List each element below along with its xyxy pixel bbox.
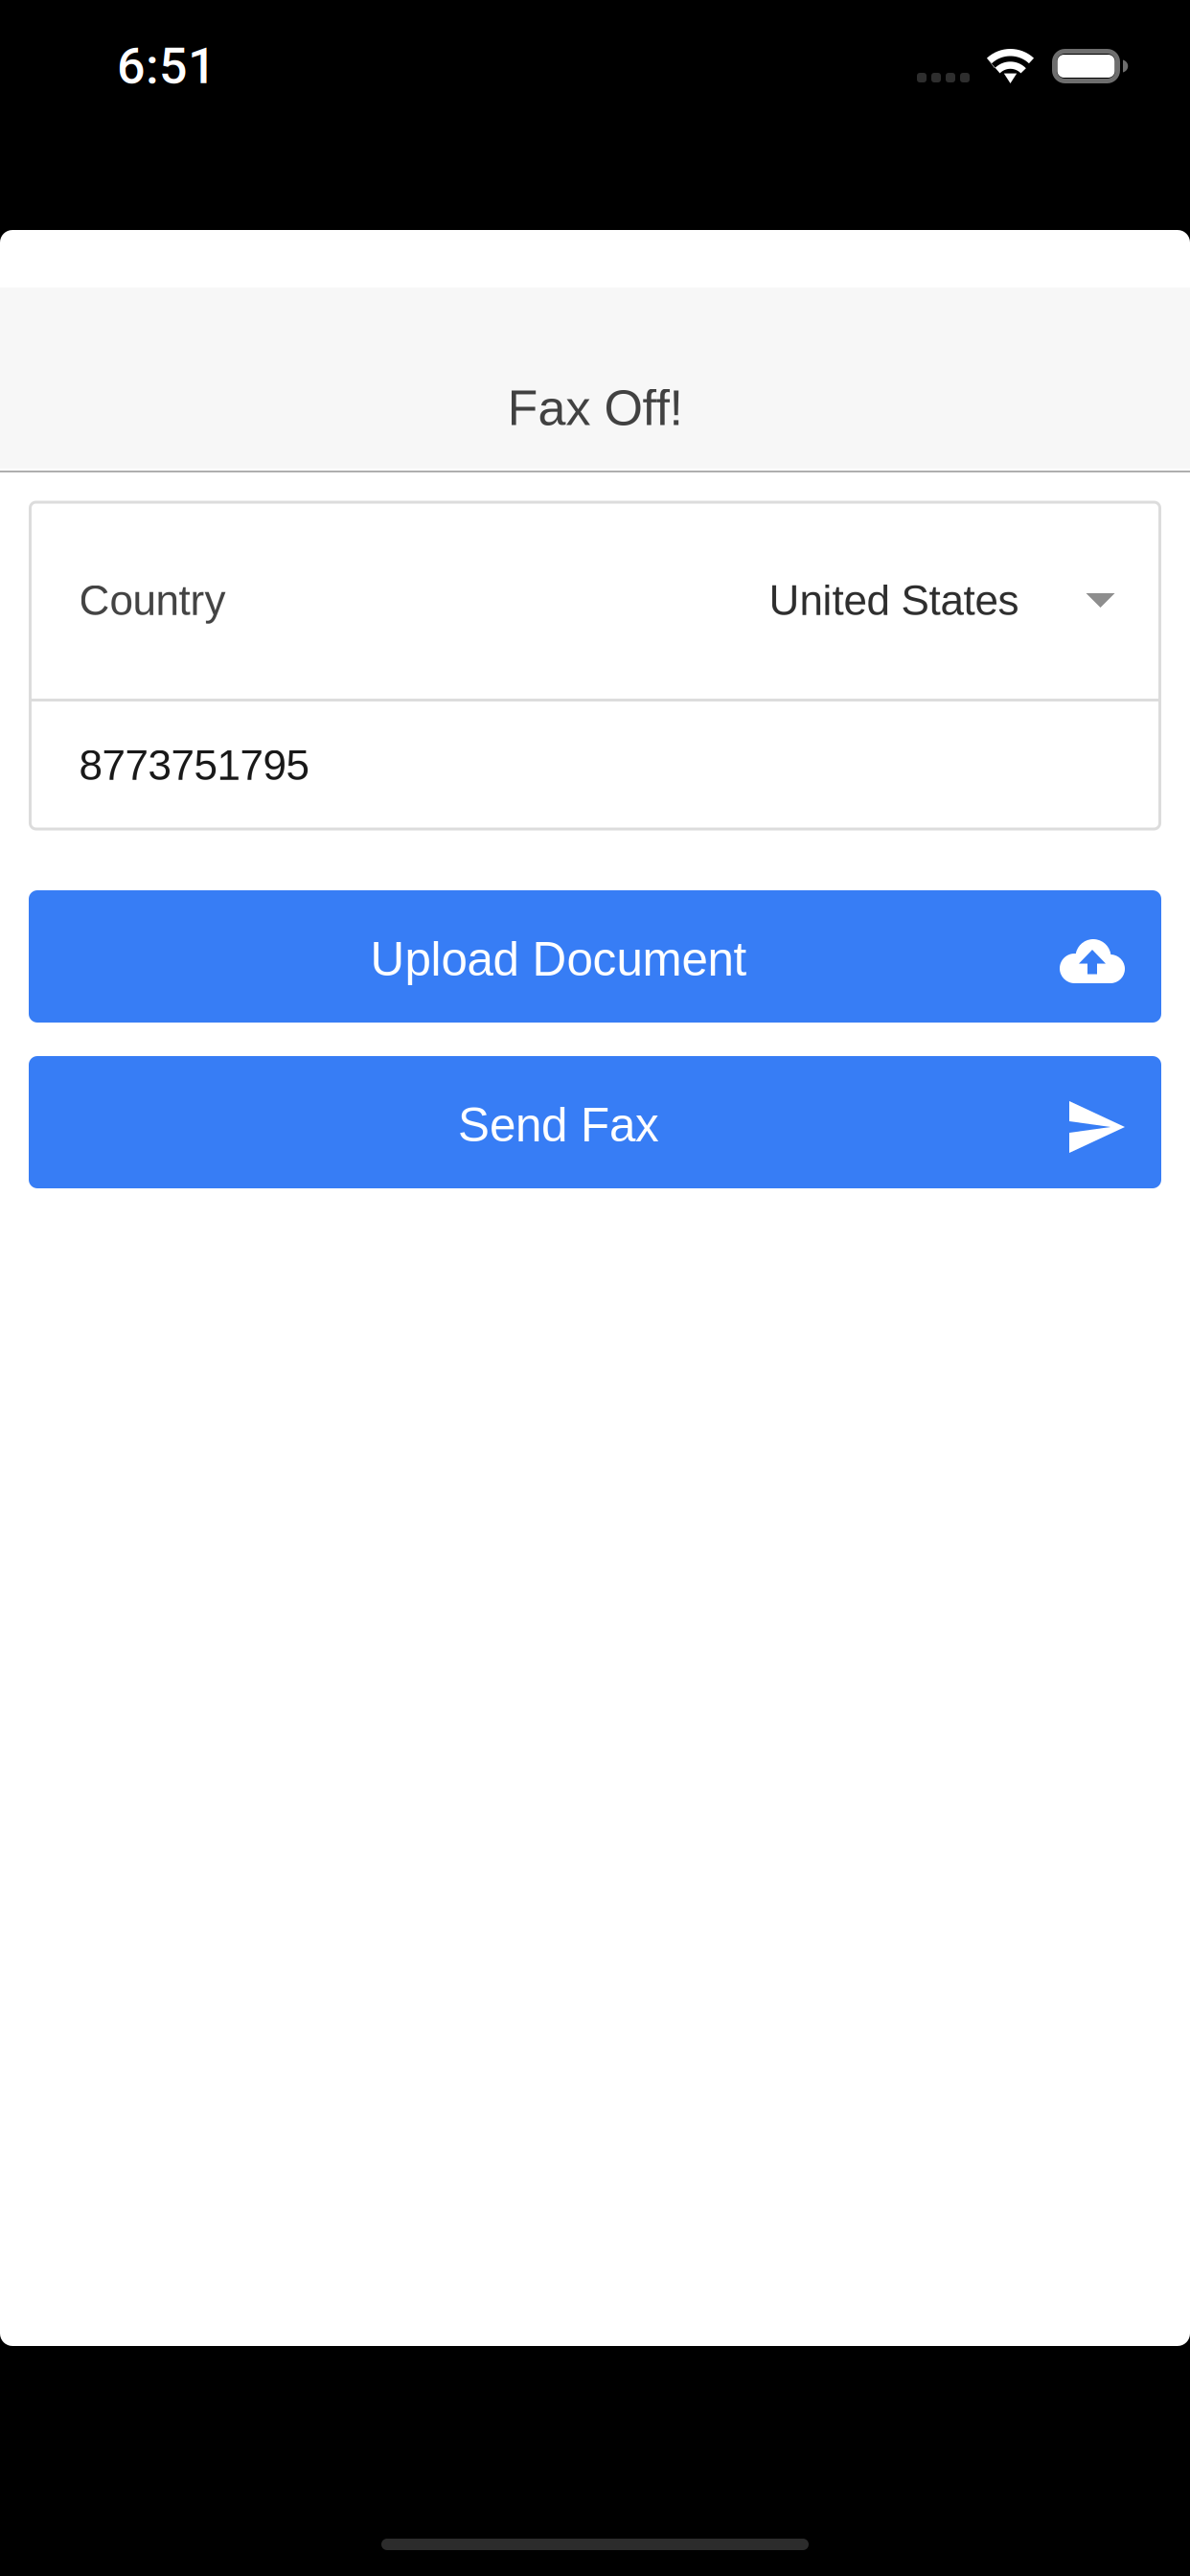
button[interactable]: Upload Document	[29, 890, 1161, 1023]
button[interactable]: Country	[30, 502, 1160, 699]
staticText: Upload Document	[370, 933, 747, 986]
staticText: 6:51	[117, 37, 217, 95]
button[interactable]: Send Fax	[29, 1056, 1161, 1188]
staticText: Send Fax	[458, 1099, 659, 1151]
button[interactable]: 8773751795	[30, 701, 1160, 829]
staticText: Country	[79, 577, 226, 624]
staticText: 8773751795	[79, 742, 309, 789]
staticText: United States	[769, 577, 1019, 624]
staticText: Fax Off!	[507, 380, 683, 436]
